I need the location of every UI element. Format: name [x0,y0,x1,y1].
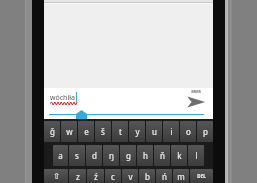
button[interactable]: g [120,145,136,166]
staticText: i [170,126,173,137]
staticText: c [111,171,115,182]
staticText: ǧ [50,126,55,137]
staticText: ⇧ [53,172,60,181]
staticText: u [152,126,157,137]
button[interactable]: l [188,145,204,166]
staticText: e [84,126,89,137]
staticText: l [195,150,198,161]
staticText: ŋ [109,150,114,161]
staticText: h [143,150,148,161]
button[interactable]: b [139,169,155,183]
button[interactable]: p [197,121,213,142]
button[interactable]: a [53,145,68,166]
staticText: ź [94,171,98,182]
button[interactable]: ň [154,145,170,166]
button[interactable]: w [61,121,77,142]
staticText: d [92,150,97,161]
staticText: s [75,150,79,161]
button[interactable]: ź [87,169,104,183]
button[interactable]: d [86,145,102,166]
button[interactable]: t [112,121,128,142]
staticText: p [203,126,208,137]
staticText: ň [160,150,165,161]
staticText: k [177,150,182,161]
staticText: t [119,126,122,137]
button[interactable]: š [95,121,111,142]
button[interactable]: e [78,121,94,142]
button[interactable]: ń [156,169,172,183]
staticText: MMS [191,89,201,94]
staticText: w [66,126,73,137]
staticText: y [135,126,140,137]
button[interactable]: ǧ [44,121,60,142]
button[interactable]: m [173,169,189,183]
staticText: wóchiła [50,93,75,103]
staticText: v [128,171,133,182]
button[interactable]: Send MMS [183,89,209,115]
button[interactable]: ŋ [103,145,119,166]
button[interactable]: v [122,169,138,183]
staticText: z [76,171,80,182]
button[interactable]: s [69,145,85,166]
staticText: o [186,126,191,137]
button[interactable]: ⇧ [44,169,68,183]
button[interactable]: k [171,145,187,166]
button[interactable]: c [105,169,121,183]
staticText: a [58,150,63,161]
staticText: m [177,171,185,182]
staticText: g [126,150,131,161]
staticText: š [101,126,105,137]
button[interactable]: DEL [190,169,213,183]
staticText: ń [162,171,167,182]
staticText: b [145,171,150,182]
button[interactable]: z [69,169,86,183]
button[interactable]: wóchiła [49,91,164,115]
button[interactable]: o [180,121,196,142]
button[interactable]: i [163,121,179,142]
staticText: DEL [197,173,206,179]
button[interactable]: y [129,121,145,142]
button[interactable]: u [146,121,162,142]
button[interactable]: h [137,145,153,166]
